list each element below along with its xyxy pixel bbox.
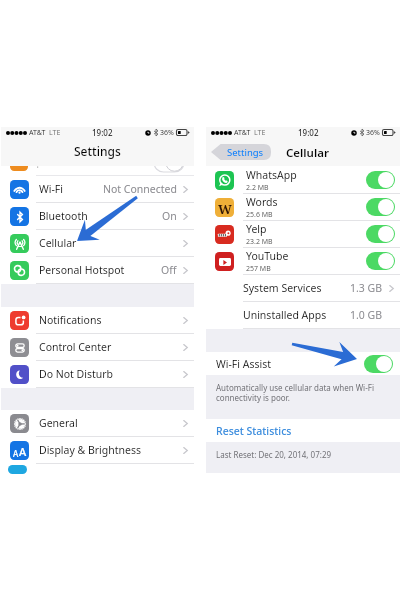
button[interactable]: System Services [206, 275, 400, 302]
staticText: LTE [254, 128, 266, 138]
button[interactable]: Wi-Fi Assist [206, 352, 400, 375]
staticText: Bluetooth [39, 209, 88, 223]
staticText: Off [161, 263, 177, 277]
button[interactable]: Do Not Disturb [1, 361, 194, 388]
staticText: Last Reset: Dec 20, 2014, 07:29 [216, 449, 332, 460]
staticText: 19:02 [92, 127, 113, 138]
staticText: 19:02 [298, 127, 319, 138]
staticText: Automatically use cellular data when Wi-… [216, 382, 374, 403]
button[interactable]: W [206, 194, 400, 221]
button[interactable]: Control Center [1, 334, 194, 361]
button[interactable]: Wi-Fi [1, 176, 194, 203]
staticText: 25.6 MB [246, 210, 273, 220]
staticText: AT&T [234, 128, 251, 138]
staticText: Cellular [39, 236, 77, 250]
button[interactable]: Yelp [206, 221, 400, 248]
staticText: Control Center [39, 340, 112, 354]
button[interactable]: A [1, 437, 194, 464]
staticText: Settings [74, 143, 121, 159]
staticText: Settings [227, 146, 264, 159]
button[interactable]: YouTube [206, 248, 400, 275]
button[interactable]: Personal Hotspot [1, 257, 194, 284]
staticText: Uninstalled Apps [243, 308, 327, 322]
button[interactable]: Bluetooth [1, 203, 194, 230]
button[interactable]: Toggle [366, 171, 395, 189]
staticText: W [218, 200, 232, 217]
button[interactable]: WhatsApp [206, 167, 400, 194]
staticText: 23.2 MB [246, 237, 273, 247]
staticText: Not Connected [103, 182, 177, 196]
staticText: Wi-Fi [39, 182, 64, 196]
staticText: 257 MB [246, 264, 271, 274]
staticText: A [13, 448, 19, 459]
staticText: Display & Brightness [39, 443, 142, 457]
button[interactable]: Toggle [366, 252, 395, 270]
staticText: General [39, 416, 78, 430]
staticText: A [19, 444, 27, 459]
staticText: YouTube [246, 249, 289, 263]
staticText: Cellular [286, 145, 329, 161]
staticText: 2.2 MB [246, 183, 269, 193]
button[interactable]: Toggle [366, 225, 395, 243]
button[interactable]: Settings [211, 144, 271, 160]
staticText: Personal Hotspot [39, 263, 125, 277]
staticText: Notifications [39, 313, 102, 327]
staticText: System Services [243, 281, 322, 295]
staticText: 1.0 GB [350, 308, 383, 322]
staticText: AT&T [29, 128, 46, 138]
button[interactable]: Notifications [1, 307, 194, 334]
staticText: WhatsApp [246, 168, 297, 182]
button[interactable]: Uninstalled Apps [206, 302, 400, 329]
button[interactable]: General [1, 410, 194, 437]
staticText: 36% [366, 128, 380, 138]
button[interactable]: Reset Statistics [206, 419, 400, 442]
staticText: 1.3 GB [350, 281, 383, 295]
button[interactable]: Cellular [1, 230, 194, 257]
staticText: On [162, 209, 177, 223]
button[interactable]: Toggle [366, 198, 395, 216]
staticText: Words [246, 195, 278, 209]
staticText: Do Not Disturb [39, 367, 114, 381]
staticText: LTE [49, 128, 61, 138]
button[interactable]: Toggle [364, 355, 393, 373]
staticText: Yelp [246, 222, 267, 236]
staticText: Reset Statistics [216, 424, 292, 438]
staticText: Wi-Fi Assist [216, 357, 272, 371]
staticText: 36% [160, 128, 174, 138]
